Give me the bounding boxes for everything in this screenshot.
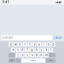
staticText: x bbox=[22, 53, 23, 57]
button[interactable]: z bbox=[16, 53, 20, 57]
button[interactable]: v bbox=[30, 53, 34, 57]
staticText: u bbox=[38, 43, 40, 46]
staticText: g bbox=[31, 48, 33, 52]
staticText: b bbox=[36, 53, 38, 57]
button[interactable]: s bbox=[16, 48, 20, 52]
button[interactable]: 123 bbox=[9, 58, 15, 63]
staticText: Search bbox=[5, 36, 13, 39]
button[interactable]: l bbox=[49, 48, 53, 52]
button[interactable]: space bbox=[21, 58, 45, 63]
button[interactable]: d bbox=[20, 48, 25, 52]
button[interactable]: e bbox=[18, 42, 22, 47]
button[interactable]: k bbox=[44, 48, 48, 52]
button[interactable] bbox=[16, 58, 21, 63]
staticText: w bbox=[14, 43, 16, 46]
staticText: z bbox=[17, 53, 18, 57]
staticText: t bbox=[29, 43, 30, 46]
staticText: i bbox=[43, 43, 44, 46]
button[interactable]: g bbox=[30, 48, 34, 52]
button[interactable]: i bbox=[42, 42, 46, 47]
staticText: l bbox=[50, 48, 51, 52]
staticText: k bbox=[46, 48, 47, 52]
staticText: 9:41 bbox=[2, 0, 9, 4]
button[interactable]: p bbox=[51, 42, 55, 47]
button[interactable]: c bbox=[25, 53, 29, 57]
button[interactable]: m bbox=[44, 53, 48, 57]
staticText: f bbox=[27, 48, 28, 52]
button[interactable]: r bbox=[23, 42, 27, 47]
button[interactable]: x bbox=[20, 53, 25, 57]
staticText: h bbox=[36, 48, 38, 52]
staticText: m bbox=[45, 53, 47, 57]
staticText: c bbox=[27, 53, 28, 57]
button[interactable]: q bbox=[9, 42, 13, 47]
staticText: n bbox=[40, 53, 42, 57]
staticText: Cancel bbox=[53, 36, 62, 39]
button[interactable]: u bbox=[37, 42, 41, 47]
button[interactable]: y bbox=[32, 42, 36, 47]
staticText: e bbox=[19, 43, 21, 46]
button[interactable]: w bbox=[13, 42, 17, 47]
staticText: r bbox=[24, 43, 25, 46]
button[interactable]: h bbox=[35, 48, 39, 52]
staticText: o bbox=[48, 43, 50, 46]
button[interactable]: j bbox=[39, 48, 44, 52]
button[interactable]: n bbox=[39, 53, 44, 57]
staticText: Go bbox=[50, 60, 52, 61]
button[interactable]: Cancel bbox=[53, 35, 62, 40]
button[interactable]: a bbox=[11, 48, 15, 52]
staticText: d bbox=[21, 48, 23, 52]
button[interactable]: Go bbox=[46, 58, 55, 63]
staticText: j bbox=[41, 48, 42, 52]
button[interactable]: b bbox=[35, 53, 39, 57]
staticText: y bbox=[34, 43, 35, 46]
button[interactable]: t bbox=[28, 42, 32, 47]
staticText: space bbox=[31, 60, 36, 61]
button[interactable]: o bbox=[47, 42, 51, 47]
staticText: 123 bbox=[10, 60, 13, 61]
staticText: a bbox=[12, 48, 13, 52]
staticText: s bbox=[17, 48, 18, 52]
staticText: p bbox=[52, 43, 54, 46]
staticText: q bbox=[10, 43, 12, 46]
button[interactable]: f bbox=[25, 48, 29, 52]
